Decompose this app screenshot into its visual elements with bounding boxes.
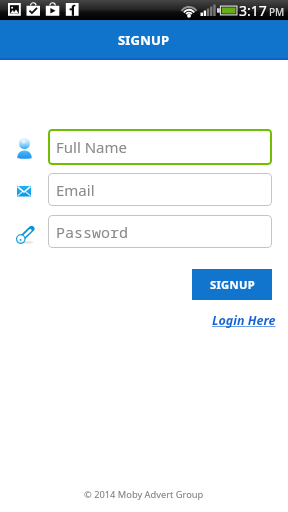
staticText: SIGNUP [118, 31, 170, 49]
staticText: SIGNUP [210, 277, 255, 292]
staticText: Login Here [212, 312, 276, 329]
staticText: Email [56, 180, 95, 200]
button[interactable]: Password [48, 215, 272, 248]
staticText: PM [269, 5, 285, 19]
button[interactable]: Full Name [48, 129, 272, 165]
staticText: 3:17 [239, 1, 267, 20]
staticText: Password [56, 222, 129, 242]
other: Password [0, 215, 48, 248]
button[interactable]: Email [48, 173, 272, 206]
staticText: Full Name [56, 137, 127, 157]
button[interactable]: SIGNUP [192, 269, 272, 300]
other: Full name [0, 129, 48, 165]
other: Email [0, 173, 48, 206]
staticText: © 2014 Moby Advert Group [84, 488, 204, 501]
button[interactable]: Login Here [212, 312, 276, 329]
